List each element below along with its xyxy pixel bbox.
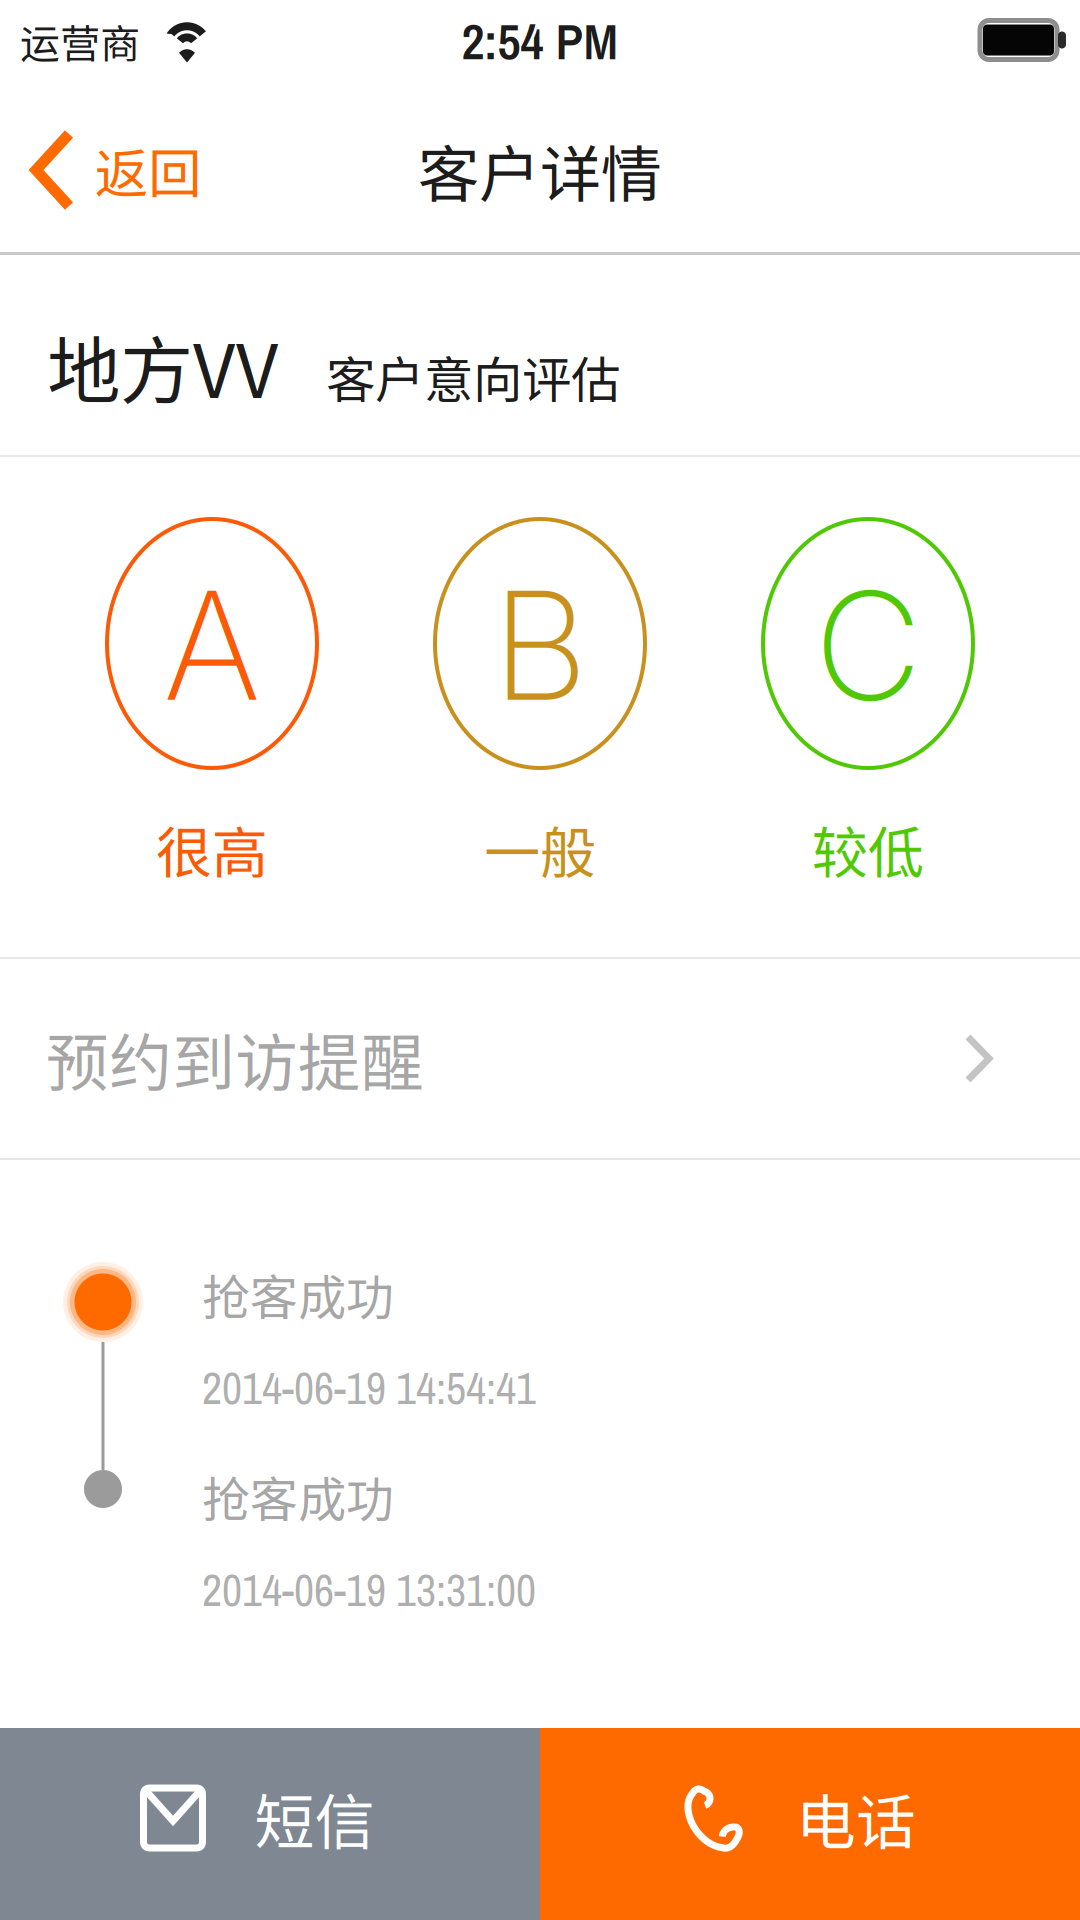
staticText: 运营商 [20, 12, 140, 70]
button[interactable]: B [376, 457, 704, 957]
staticText: C [814, 555, 922, 736]
staticText: 短信 [254, 1775, 374, 1861]
button[interactable]: 电话 [540, 1728, 1080, 1920]
staticText: 2:54 PM [461, 7, 618, 75]
staticText: 返回 [95, 131, 201, 209]
staticText: A [163, 555, 261, 736]
staticText: 2014-06-19 14:54:41 [202, 1358, 536, 1418]
staticText: 电话 [796, 1775, 916, 1861]
button[interactable]: 短信 [0, 1728, 540, 1920]
staticText: 一般 [484, 808, 596, 890]
staticText: 2014-06-19 13:31:00 [202, 1560, 536, 1620]
button[interactable]: A [48, 457, 376, 957]
button[interactable]: C [704, 457, 1032, 957]
staticText: 很高 [156, 808, 268, 890]
staticText: 客户详情 [418, 126, 662, 214]
staticText: 客户意向评估 [326, 341, 620, 412]
button[interactable]: 返回 [0, 88, 225, 252]
staticText: 地方VV [47, 313, 278, 419]
staticText: 抢客成功 [202, 1259, 394, 1329]
button[interactable]: 预约到访提醒 [0, 959, 1080, 1158]
staticText: 抢客成功 [202, 1461, 394, 1531]
staticText: 预约到访提醒 [46, 1013, 424, 1104]
staticText: B [492, 555, 588, 736]
staticText: 较低 [812, 808, 924, 890]
